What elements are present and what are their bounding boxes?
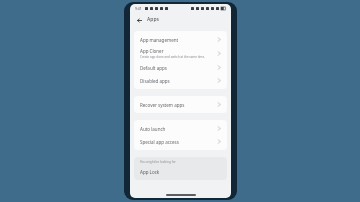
button[interactable]: App Lock xyxy=(134,166,227,177)
staticText: Apps xyxy=(147,16,159,23)
staticText: Create app clone and switch at the same … xyxy=(140,55,205,59)
staticText: Recover system apps xyxy=(140,102,185,108)
staticText: App management xyxy=(140,37,179,43)
staticText: Auto launch xyxy=(140,126,166,132)
button[interactable]: App management xyxy=(134,33,227,46)
staticText: Default apps xyxy=(140,65,167,71)
staticText: Disabled apps xyxy=(140,78,170,84)
staticText: App Cloner xyxy=(140,48,164,54)
button[interactable]: Special app access xyxy=(134,135,227,148)
button[interactable]: Recover system apps xyxy=(134,98,227,111)
staticText: Special app access xyxy=(140,139,179,145)
button[interactable]: Back xyxy=(135,16,143,24)
button[interactable]: Auto launch xyxy=(134,122,227,135)
staticText: 9:41 xyxy=(135,6,142,11)
staticText: App Lock xyxy=(140,169,160,175)
staticText: You might be looking for xyxy=(140,160,176,164)
button[interactable]: App Cloner xyxy=(134,46,227,61)
button[interactable]: Disabled apps xyxy=(134,74,227,87)
button[interactable]: Default apps xyxy=(134,61,227,74)
